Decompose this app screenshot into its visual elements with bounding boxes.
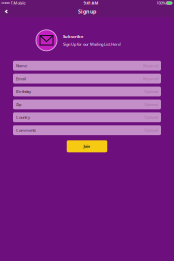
staticText: Required [143,63,158,68]
button[interactable]: Comments [13,125,161,135]
button[interactable]: Email [13,74,161,83]
button[interactable]: Join [67,140,107,152]
button[interactable]: Birthday [13,87,161,96]
button[interactable]: Zip [13,99,161,109]
staticText: Sign up [78,8,96,15]
staticText: Country [16,115,30,120]
staticText: Name [16,63,27,68]
button[interactable]: Name [13,61,161,71]
button[interactable]: Country [13,112,161,122]
staticText: Comments [16,127,36,133]
staticText: 100% [157,0,166,6]
staticText: Email [16,76,26,81]
staticText: Required [143,76,158,81]
staticText: Optional [144,89,158,94]
button[interactable]: Back [0,6,13,17]
staticText: Optional [144,127,158,133]
staticText: Join [83,144,90,149]
staticText: 9:41 AM [83,0,98,6]
staticText: Optional [144,102,158,107]
staticText: Optional [144,115,158,120]
staticText: Subscribe [63,34,83,39]
staticText: T-Mobile [10,0,25,6]
staticText: Zip [16,102,21,107]
staticText: Sign Up for our Mailing List Here! [63,41,121,47]
staticText: Birthday [16,89,31,94]
